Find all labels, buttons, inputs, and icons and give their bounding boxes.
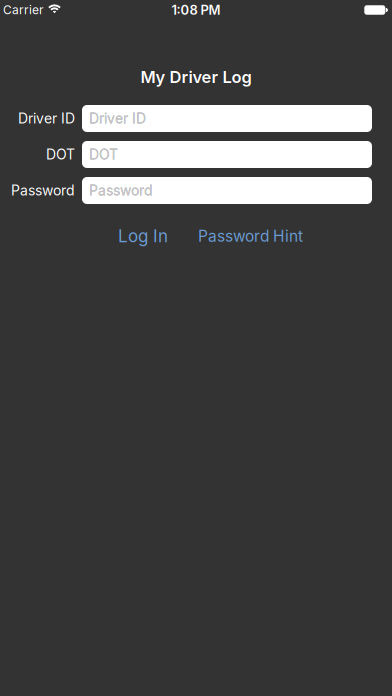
staticText: Driver ID [89,110,146,127]
textField[interactable]: DOT [89,146,372,163]
staticText: Password [89,182,153,199]
staticText: DOT [89,146,118,163]
staticText: Password [11,182,75,199]
button[interactable]: Password Hint [198,227,303,245]
button[interactable]: Log In [118,226,168,246]
staticText: Log In [118,226,168,246]
staticText: Driver ID [89,110,146,127]
staticText: Password [89,182,153,199]
staticText: 1:08 PM [171,2,220,18]
secureTextField[interactable]: Password [89,182,372,199]
staticText: DOT [89,146,118,163]
staticText: My Driver Log [140,67,251,87]
staticText: Driver ID [18,110,75,127]
staticText: Carrier [3,3,44,17]
staticText: DOT [46,146,75,163]
staticText: Password Hint [198,227,303,245]
textField[interactable]: Driver ID [89,110,372,127]
